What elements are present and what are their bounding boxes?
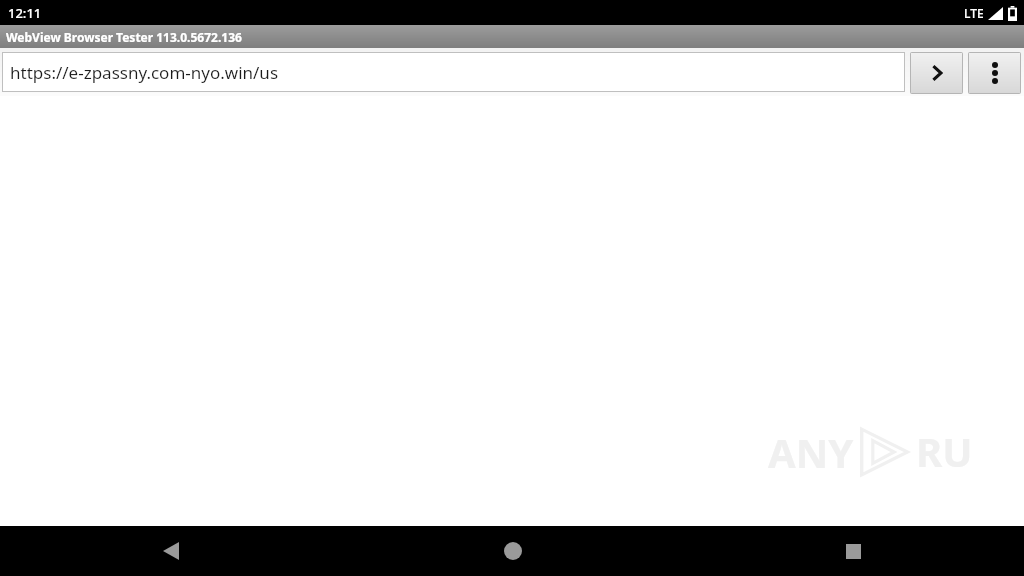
button[interactable]: Back bbox=[0, 526, 342, 576]
staticText: WebView Browser Tester 113.0.5672.136 bbox=[6, 29, 242, 45]
button[interactable]: Recent apps bbox=[683, 526, 1024, 576]
button[interactable]: More options bbox=[969, 53, 1020, 93]
button[interactable]: https://e-zpassny.com-nyo.win/us bbox=[3, 53, 904, 91]
staticText: https://e-zpassny.com-nyo.win/us bbox=[10, 61, 279, 84]
staticText: ANY bbox=[768, 425, 854, 479]
button[interactable]: Go bbox=[911, 53, 962, 93]
staticText: LTE bbox=[964, 5, 984, 21]
staticText: 12:11 bbox=[8, 4, 42, 22]
staticText: RUN bbox=[916, 424, 976, 480]
button[interactable]: Home bbox=[342, 526, 683, 576]
